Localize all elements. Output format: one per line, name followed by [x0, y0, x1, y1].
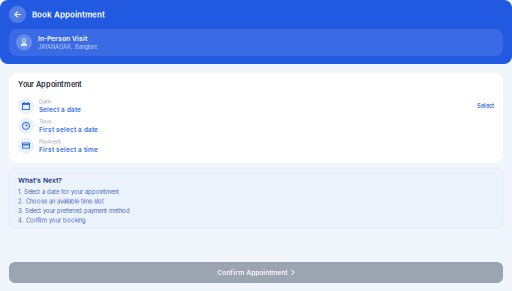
- staticText: What's Next?: [18, 176, 62, 184]
- staticText: 4. Confirm your booking: [18, 217, 86, 224]
- button[interactable]: Date: [18, 98, 494, 114]
- staticText: JAYANAGAR, Banglore: [38, 44, 97, 50]
- staticText: Your Appointment: [18, 80, 82, 89]
- staticText: 3. Select your preferred payment method: [18, 207, 130, 214]
- staticText: Payment: [39, 138, 61, 145]
- staticText: Select: [477, 102, 494, 109]
- staticText: Book Appointment: [32, 10, 105, 19]
- staticText: First select a date: [39, 126, 98, 133]
- staticText: Time: [39, 118, 51, 125]
- button[interactable]: Payment: [18, 138, 494, 154]
- staticText: First select a time: [39, 146, 98, 153]
- staticText: 1. Select a date for your appointment: [18, 188, 119, 195]
- staticText: Confirm Appointment: [217, 268, 287, 277]
- staticText: In-Person Visit: [38, 35, 87, 43]
- button[interactable]: Confirm Appointment: [9, 262, 503, 283]
- staticText: Date: [39, 98, 51, 105]
- button[interactable]: Time: [18, 118, 494, 134]
- staticText: Select a date: [39, 106, 81, 113]
- button[interactable]: In-Person Visit: [9, 29, 503, 56]
- staticText: 2. Choose an available time slot: [18, 198, 104, 205]
- button[interactable]: Back: [9, 6, 26, 23]
